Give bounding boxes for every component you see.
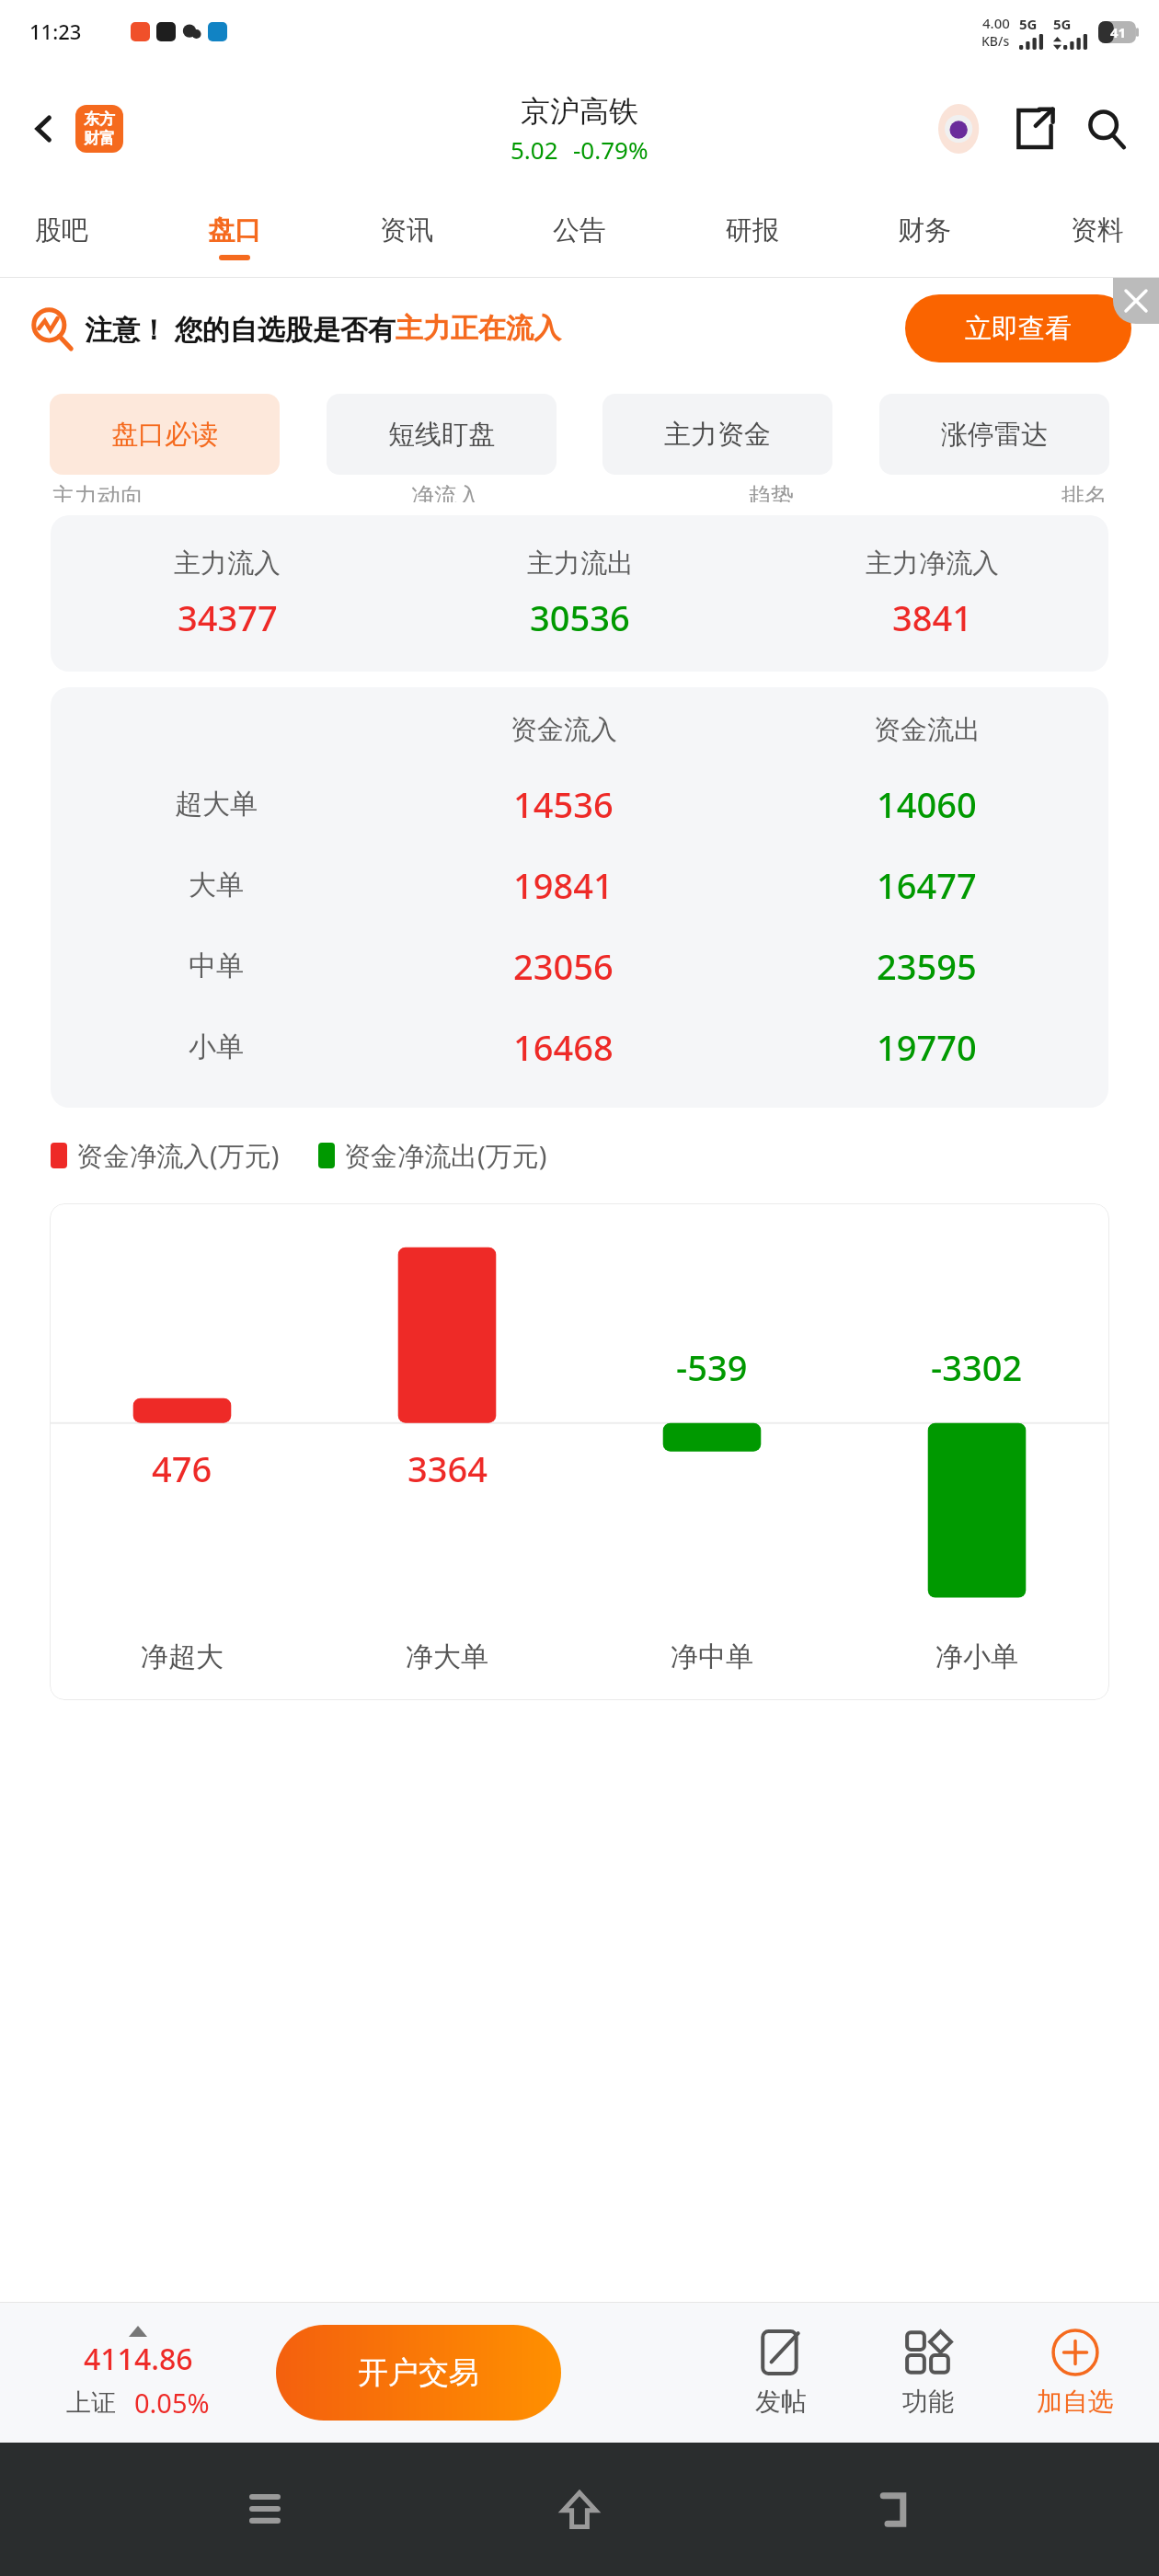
staticText: 发帖 — [755, 2386, 807, 2418]
button[interactable]: 公告 — [553, 195, 606, 278]
staticText: 盘口 — [208, 213, 261, 247]
button[interactable]: 资讯 — [380, 195, 433, 278]
staticText: 23056 — [513, 942, 614, 990]
button[interactable]: 主力流入 — [51, 515, 1108, 672]
staticText: 11:23 — [29, 17, 82, 45]
staticText: 财务 — [898, 213, 951, 247]
staticText: 东方 — [84, 109, 115, 129]
staticText: 净超大 — [141, 1639, 224, 1674]
staticText: 0.05% — [134, 2385, 210, 2421]
button[interactable]: 资料 — [1071, 195, 1124, 278]
button[interactable]: 主力资金 — [602, 394, 832, 475]
staticText: 资金净流出(万元) — [344, 1137, 547, 1174]
staticText: 净流入 — [411, 482, 480, 502]
staticText: 资金流出 — [874, 713, 981, 747]
staticText: 5G — [1053, 15, 1072, 33]
staticText: 中单 — [189, 949, 244, 983]
staticText: 超大单 — [175, 787, 258, 822]
button[interactable]: AI助手 — [933, 98, 993, 159]
staticText: 34377 — [178, 593, 278, 641]
button[interactable]: 股吧 — [35, 195, 88, 278]
staticText: 23595 — [877, 942, 977, 990]
staticText: 资料 — [1071, 213, 1124, 247]
staticText: 公告 — [553, 213, 606, 247]
staticText: 30536 — [530, 593, 630, 641]
button[interactable]: 功能 — [868, 2329, 988, 2418]
button[interactable]: Recents — [214, 2459, 316, 2560]
staticText: 资金流入 — [511, 713, 617, 747]
staticText: 19841 — [513, 861, 614, 909]
staticText: 注意！ 您的自选股是否有 — [85, 310, 396, 348]
button[interactable]: Back — [18, 103, 70, 155]
staticText: 京沪高铁 — [521, 93, 638, 130]
button[interactable]: Back — [844, 2459, 946, 2560]
staticText: 41 — [1110, 23, 1127, 41]
button[interactable]: 注意！ 您的自选股是否有 — [31, 278, 1131, 379]
staticText: 5.02 — [511, 133, 558, 166]
button[interactable]: 盘口 — [208, 195, 261, 278]
staticText: 研报 — [726, 213, 779, 247]
button[interactable]: 开户交易 — [276, 2325, 561, 2421]
button[interactable]: 涨停雷达 — [879, 394, 1109, 475]
staticText: 资讯 — [380, 213, 433, 247]
button[interactable]: 加自选 — [1016, 2329, 1135, 2418]
button[interactable]: 研报 — [726, 195, 779, 278]
staticText: 财富 — [84, 129, 115, 148]
button[interactable]: 4114.86 — [0, 2303, 276, 2443]
button[interactable]: 发帖 — [721, 2329, 841, 2418]
staticText: 趋势 — [748, 482, 794, 502]
button[interactable]: 资金流入 — [51, 687, 1108, 1108]
staticText: 涨停雷达 — [941, 418, 1048, 452]
staticText: 净大单 — [406, 1639, 488, 1674]
button[interactable]: 财务 — [898, 195, 951, 278]
staticText: 功能 — [902, 2386, 954, 2418]
staticText: 14536 — [513, 780, 614, 828]
staticText: 主力净流入 — [866, 546, 999, 581]
staticText: -539 — [676, 1343, 748, 1391]
staticText: 476 — [152, 1444, 212, 1492]
staticText: 3364 — [407, 1444, 488, 1492]
staticText: -0.79% — [573, 133, 648, 166]
staticText: 小单 — [189, 1029, 244, 1064]
button[interactable]: 东方财富 — [75, 105, 123, 153]
button[interactable]: 短线盯盘 — [327, 394, 557, 475]
staticText: 主力流入 — [174, 546, 281, 581]
staticText: 上证 — [66, 2387, 116, 2419]
staticText: 主力资金 — [664, 418, 771, 452]
staticText: 4.00 — [982, 14, 1010, 32]
staticText: 开户交易 — [358, 2353, 479, 2392]
staticText: 5G — [1019, 15, 1038, 33]
staticText: 14060 — [877, 780, 977, 828]
button[interactable]: 立即查看 — [905, 294, 1131, 362]
staticText: 盘口必读 — [111, 418, 218, 452]
button[interactable]: 盘口必读 — [50, 394, 280, 475]
staticText: 立即查看 — [965, 312, 1072, 346]
staticText: 净中单 — [671, 1639, 753, 1674]
staticText: 资金净流入(万元) — [76, 1137, 280, 1174]
staticText: 4114.86 — [84, 2339, 193, 2379]
staticText: 16477 — [877, 861, 977, 909]
staticText: 排名 — [1061, 482, 1107, 502]
staticText: 19770 — [877, 1023, 977, 1071]
staticText: 主力动向 — [52, 482, 143, 502]
staticText: 16468 — [513, 1023, 614, 1071]
staticText: 股吧 — [35, 213, 88, 247]
button[interactable]: Home — [529, 2459, 630, 2560]
staticText: -3302 — [931, 1343, 1023, 1391]
staticText: 主力流出 — [527, 546, 634, 581]
button[interactable]: Search — [1076, 98, 1137, 159]
staticText: 短线盯盘 — [388, 418, 495, 452]
button[interactable]: Share — [1004, 98, 1065, 159]
staticText: KB/s — [981, 32, 1010, 50]
staticText: 加自选 — [1037, 2386, 1114, 2418]
button[interactable]: 476 — [50, 1203, 1109, 1700]
staticText: 主力正在流入 — [396, 311, 561, 346]
staticText: 3841 — [892, 593, 972, 641]
button[interactable]: Close — [1113, 278, 1159, 324]
staticText: 大单 — [189, 868, 244, 903]
staticText: 净小单 — [935, 1639, 1018, 1674]
